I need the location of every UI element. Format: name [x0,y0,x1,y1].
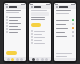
button[interactable]: Tab 1 [32,58,35,61]
button[interactable]: Tab 2 [36,58,39,61]
button[interactable] [6,28,24,30]
button[interactable] [56,19,74,21]
button[interactable] [56,23,74,25]
button[interactable] [56,35,74,37]
button[interactable]: Menu [29,3,51,61]
button[interactable]: Tab 3 [16,58,19,61]
button[interactable] [56,27,74,29]
button[interactable]: Tab 2 [11,58,14,61]
button[interactable] [31,39,49,41]
button[interactable] [6,22,24,24]
button[interactable] [6,31,24,33]
button[interactable]: Tab 4 [45,58,48,61]
button[interactable] [56,31,74,33]
button[interactable]: Back [54,3,76,61]
button[interactable] [6,16,24,18]
button[interactable]: Menu [4,3,26,61]
button[interactable]: Selected item [31,23,41,27]
button[interactable]: Highlighted action [6,51,17,55]
button[interactable] [31,33,49,35]
button[interactable] [6,25,24,27]
button[interactable] [31,30,49,32]
button[interactable] [31,36,49,38]
button[interactable]: Tab 3 [41,58,44,61]
button[interactable]: Tab 4 [20,58,23,61]
button[interactable]: Tab 1 [7,58,10,61]
button[interactable] [6,19,24,21]
button[interactable] [31,42,49,44]
